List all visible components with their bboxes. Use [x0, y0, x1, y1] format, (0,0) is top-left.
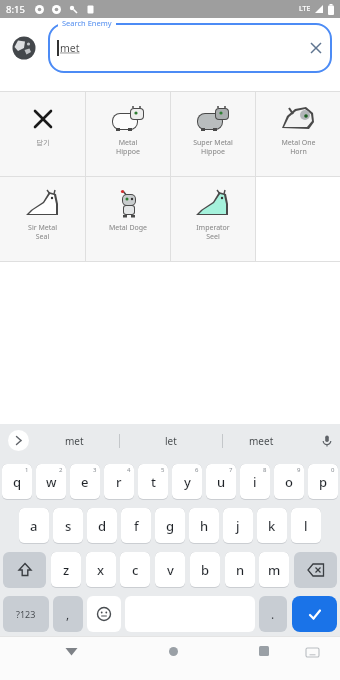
staticText: 1: [25, 466, 29, 474]
button[interactable]: Sir Metal Seal: [0, 177, 85, 261]
button[interactable]: Metal One Horn: [256, 92, 340, 176]
staticText: e: [81, 473, 89, 491]
staticText: 닫기: [36, 138, 50, 147]
button[interactable]: [310, 42, 322, 54]
staticText: h: [200, 517, 209, 535]
button[interactable]: a: [19, 508, 49, 544]
staticText: d: [98, 517, 107, 535]
button[interactable]: [3, 552, 46, 588]
staticText: meet: [249, 434, 274, 448]
button[interactable]: Metal Doge: [86, 177, 170, 261]
button[interactable]: f: [121, 508, 151, 544]
button[interactable]: .: [259, 596, 287, 632]
staticText: f: [134, 517, 139, 535]
button[interactable]: j: [223, 508, 253, 544]
staticText: met: [60, 41, 80, 55]
staticText: LTE: [299, 4, 311, 14]
staticText: let: [165, 434, 177, 448]
button[interactable]: w: [36, 464, 66, 500]
staticText: 2: [59, 466, 63, 474]
button[interactable]: g: [155, 508, 185, 544]
staticText: c: [132, 561, 139, 579]
button[interactable]: meet: [223, 424, 299, 457]
staticText: a: [30, 517, 38, 535]
button[interactable]: Imperator Seel: [171, 177, 255, 261]
button[interactable]: [12, 36, 36, 60]
staticText: x: [97, 561, 105, 579]
button[interactable]: y: [172, 464, 202, 500]
staticText: 8: [263, 466, 267, 474]
staticText: ?123: [16, 608, 36, 620]
staticText: w: [46, 473, 57, 491]
staticText: 0: [331, 466, 335, 474]
staticText: r: [116, 473, 122, 491]
staticText: q: [13, 473, 22, 491]
button[interactable]: [294, 552, 337, 588]
staticText: 8:15: [6, 3, 25, 16]
button[interactable]: Super Metal Hippoe: [171, 92, 255, 176]
button[interactable]: p: [308, 464, 338, 500]
button[interactable]: v: [155, 552, 185, 588]
staticText: j: [236, 517, 240, 535]
button[interactable]: [158, 636, 188, 666]
button[interactable]: Metal Hippoe: [86, 92, 170, 176]
button[interactable]: [8, 430, 29, 451]
staticText: u: [217, 473, 226, 491]
staticText: o: [285, 473, 293, 491]
staticText: i: [253, 473, 257, 491]
button[interactable]: met: [48, 23, 332, 73]
button[interactable]: 닫기: [0, 92, 85, 176]
button[interactable]: [292, 596, 337, 632]
button[interactable]: x: [86, 552, 116, 588]
staticText: l: [304, 517, 308, 535]
staticText: Metal Doge: [109, 223, 147, 233]
staticText: .: [271, 606, 275, 622]
button[interactable]: let: [120, 424, 222, 457]
button[interactable]: q: [2, 464, 32, 500]
button[interactable]: [249, 636, 279, 666]
button[interactable]: z: [51, 552, 81, 588]
staticText: Imperator Seel: [196, 223, 230, 241]
button[interactable]: [321, 435, 333, 447]
button[interactable]: ,: [53, 596, 83, 632]
button[interactable]: s: [53, 508, 83, 544]
staticText: y: [184, 473, 191, 491]
button[interactable]: k: [257, 508, 287, 544]
button[interactable]: [87, 596, 121, 632]
button[interactable]: h: [189, 508, 219, 544]
staticText: m: [268, 561, 281, 579]
staticText: Search Enemy: [62, 18, 112, 28]
staticText: Metal Hippoe: [116, 138, 140, 156]
button[interactable]: o: [274, 464, 304, 500]
staticText: s: [65, 517, 72, 535]
staticText: g: [166, 517, 175, 535]
button[interactable]: n: [225, 552, 255, 588]
staticText: t: [151, 473, 156, 491]
staticText: 9: [297, 466, 301, 474]
staticText: Super Metal Hippoe: [193, 138, 233, 156]
staticText: 5: [161, 466, 165, 474]
staticText: 7: [229, 466, 233, 474]
button[interactable]: d: [87, 508, 117, 544]
button[interactable]: m: [259, 552, 289, 588]
button[interactable]: [297, 638, 327, 668]
button[interactable]: i: [240, 464, 270, 500]
button[interactable]: t: [138, 464, 168, 500]
button[interactable]: b: [190, 552, 220, 588]
button[interactable]: [56, 636, 86, 666]
staticText: 4: [127, 466, 131, 474]
button[interactable]: ?123: [3, 596, 49, 632]
button[interactable]: r: [104, 464, 134, 500]
staticText: 6: [195, 466, 199, 474]
button[interactable]: u: [206, 464, 236, 500]
button[interactable]: c: [120, 552, 150, 588]
staticText: p: [319, 473, 328, 491]
button[interactable]: e: [70, 464, 100, 500]
button[interactable]: l: [291, 508, 321, 544]
staticText: 3: [93, 466, 97, 474]
staticText: k: [268, 517, 276, 535]
button[interactable]: met: [29, 424, 119, 457]
staticText: n: [236, 561, 245, 579]
